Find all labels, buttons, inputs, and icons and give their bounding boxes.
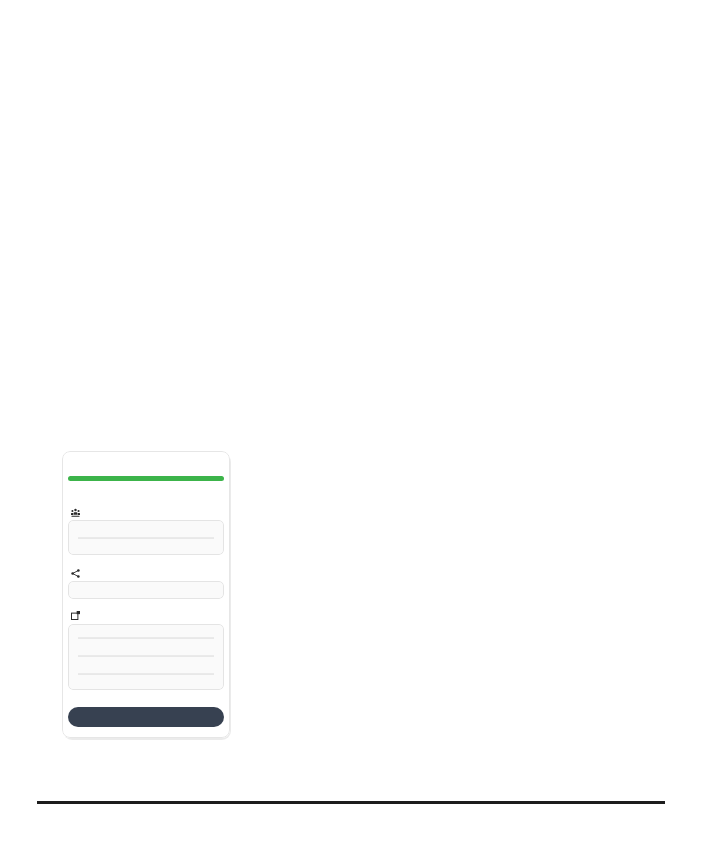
button[interactable]: Notes field	[68, 624, 224, 690]
button[interactable]: Notes	[69, 609, 81, 621]
button[interactable]: Share	[69, 567, 81, 579]
button[interactable]: Share field	[68, 581, 224, 599]
button[interactable]: Submit	[68, 707, 224, 727]
button[interactable]: Attendees	[69, 506, 81, 518]
button[interactable]: Attendees field	[68, 520, 224, 555]
